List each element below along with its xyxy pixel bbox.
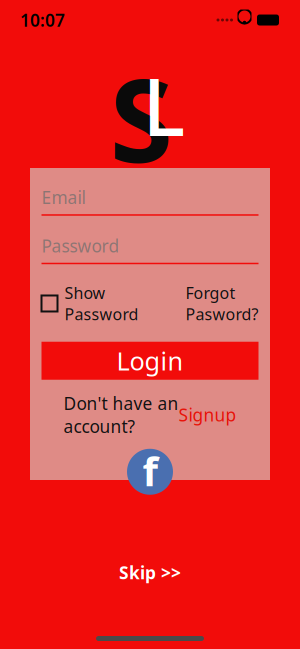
staticText: Don't have an account? bbox=[63, 392, 178, 438]
staticText: Show Password bbox=[64, 282, 138, 325]
button[interactable]: Forgot Pasword? bbox=[185, 282, 258, 325]
staticText: L bbox=[142, 52, 185, 158]
staticText: f bbox=[142, 444, 157, 497]
button[interactable]: Sign in with Facebook bbox=[127, 449, 173, 495]
staticText: Email bbox=[41, 186, 85, 209]
staticText: 10:07 bbox=[20, 8, 65, 31]
staticText: Password bbox=[41, 234, 119, 257]
button[interactable]: Login bbox=[41, 342, 258, 380]
staticText: Signup bbox=[178, 403, 236, 426]
button[interactable]: Skip >> bbox=[105, 555, 195, 590]
staticText: Skip >> bbox=[119, 561, 181, 584]
staticText: Login bbox=[116, 344, 183, 377]
staticText: Forgot Pasword? bbox=[185, 282, 258, 325]
button[interactable]: Show Password bbox=[41, 282, 138, 325]
button[interactable]: Signup bbox=[178, 403, 236, 426]
staticText: S bbox=[109, 42, 172, 194]
